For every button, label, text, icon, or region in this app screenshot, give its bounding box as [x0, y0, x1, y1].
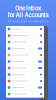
button[interactable]: [6, 39, 44, 45]
button[interactable]: [6, 78, 44, 84]
button[interactable]: [6, 52, 44, 58]
staticText: for All Accounts: [7, 12, 48, 19]
staticText: One Inbox: [15, 5, 41, 12]
button[interactable]: [6, 26, 44, 32]
button[interactable]: [6, 84, 44, 91]
button[interactable]: [6, 71, 44, 78]
button[interactable]: [6, 91, 44, 97]
button[interactable]: [6, 65, 44, 71]
button[interactable]: [6, 32, 44, 39]
staticText: All your mail in one place: [7, 20, 48, 23]
button[interactable]: [6, 45, 44, 52]
button[interactable]: [6, 58, 44, 65]
